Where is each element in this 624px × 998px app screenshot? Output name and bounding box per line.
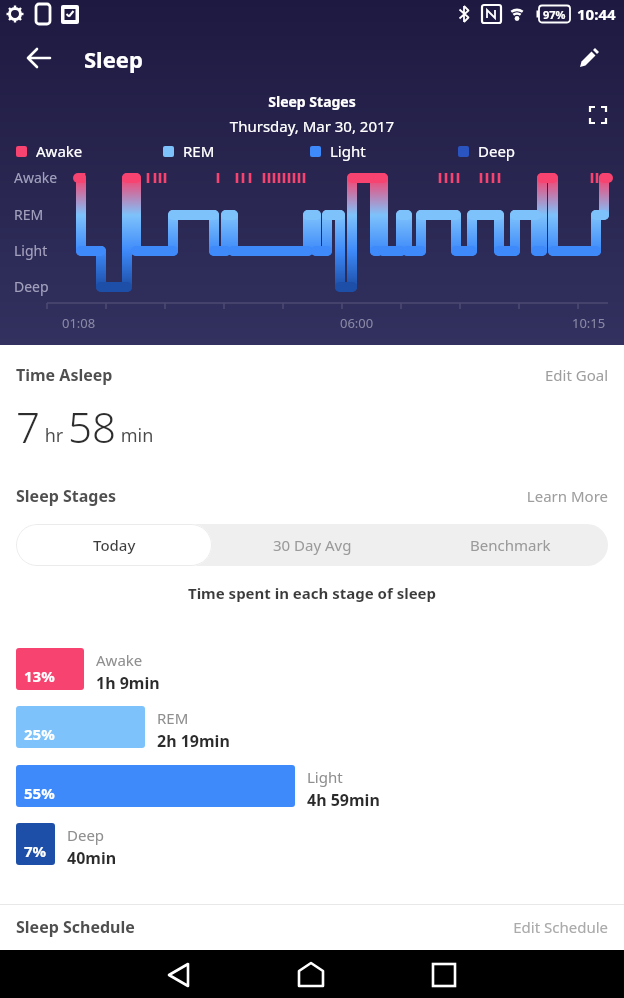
button[interactable]: 55% xyxy=(16,765,295,807)
staticText: 10:15 xyxy=(572,314,606,332)
button[interactable]: Edit Schedule xyxy=(0,917,608,937)
staticText: hr xyxy=(40,423,68,448)
staticText: 7% xyxy=(24,841,47,861)
staticText: 4h 59min xyxy=(307,789,380,811)
staticText: 1h 9min xyxy=(96,672,160,694)
staticText: 7 xyxy=(16,398,40,455)
button[interactable] xyxy=(576,45,602,71)
button[interactable]: 13% xyxy=(16,648,84,690)
staticText: 55% xyxy=(24,783,55,803)
button[interactable] xyxy=(589,106,607,124)
staticText: 10:44 xyxy=(577,4,616,24)
staticText: Light xyxy=(330,141,366,161)
staticText: Deep xyxy=(67,825,105,845)
staticText: 58 xyxy=(68,398,116,455)
staticText: Today xyxy=(93,535,136,555)
staticText: REM xyxy=(14,205,44,224)
staticText: 06:00 xyxy=(340,314,374,332)
staticText: 97% xyxy=(543,7,566,22)
staticText: Deep xyxy=(478,141,516,161)
button[interactable] xyxy=(164,960,194,990)
button[interactable]: 25% xyxy=(16,706,145,748)
staticText: Light xyxy=(307,767,343,787)
staticText: REM xyxy=(183,141,215,161)
staticText: 13% xyxy=(24,666,55,686)
staticText: Sleep xyxy=(84,44,143,74)
button[interactable]: Edit Goal xyxy=(0,365,608,385)
staticText: Thursday, Mar 30, 2017 xyxy=(0,116,624,136)
staticText: 2h 19min xyxy=(157,730,230,752)
button[interactable] xyxy=(24,44,52,72)
staticText: Sleep Stages xyxy=(0,92,624,111)
button[interactable]: 7% xyxy=(16,823,55,865)
button[interactable]: Today xyxy=(16,524,212,566)
staticText: 40min xyxy=(67,847,117,869)
staticText: REM xyxy=(157,708,189,728)
staticText: Awake xyxy=(96,650,143,670)
staticText: Deep xyxy=(14,277,49,296)
staticText: min xyxy=(116,423,154,448)
staticText: Time spent in each stage of sleep xyxy=(0,583,624,603)
staticText: Benchmark xyxy=(470,535,551,555)
staticText: 01:08 xyxy=(62,314,96,332)
staticText: Sleep Schedule xyxy=(16,916,135,938)
staticText: Sleep Stages xyxy=(16,485,117,507)
button[interactable]: Benchmark xyxy=(412,524,608,566)
staticText: 25% xyxy=(24,724,55,744)
staticText: Light xyxy=(14,241,48,260)
button[interactable] xyxy=(429,960,459,990)
staticText: Awake xyxy=(36,141,83,161)
button[interactable] xyxy=(296,960,326,990)
button[interactable]: 30 Day Avg xyxy=(212,524,412,566)
staticText: 30 Day Avg xyxy=(273,535,352,555)
staticText: Awake xyxy=(14,168,58,187)
staticText: Time Asleep xyxy=(16,364,113,386)
button[interactable]: Learn More xyxy=(0,486,608,506)
